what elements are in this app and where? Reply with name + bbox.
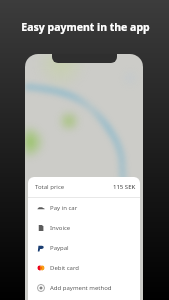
button[interactable]: Add payment method — [28, 278, 140, 298]
staticText: Total price — [35, 183, 65, 191]
staticText: Add payment method — [50, 284, 112, 292]
button[interactable]: Invoice — [28, 218, 140, 238]
button[interactable]: Paypal — [28, 238, 140, 258]
staticText: Pay in car — [50, 204, 78, 212]
staticText: Invoice — [50, 224, 71, 232]
staticText: 115 SEK — [113, 183, 136, 191]
button[interactable]: Debit card — [28, 258, 140, 278]
staticText: Easy payment in the app — [1, 20, 169, 34]
staticText: Debit card — [50, 264, 80, 272]
button[interactable]: Pay in car — [28, 198, 140, 218]
staticText: Paypal — [50, 244, 69, 252]
